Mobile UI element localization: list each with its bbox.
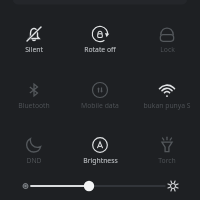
button[interactable]: Brightness — [70, 131, 130, 167]
staticText: Rotate off — [84, 45, 116, 54]
staticText: Brightness — [83, 156, 118, 165]
button[interactable]: bukan punya S — [137, 76, 197, 112]
staticText: Mobile data — [81, 101, 119, 110]
button[interactable]: Mobile data — [70, 76, 130, 112]
button[interactable]: Brightness slider — [0, 177, 200, 195]
staticText: Torch — [158, 156, 176, 165]
staticText: bukan punya S — [143, 101, 191, 110]
button[interactable]: Rotate off — [70, 20, 130, 56]
staticText: Silent — [25, 45, 43, 54]
button[interactable]: DND — [4, 131, 64, 167]
button[interactable]: Torch — [137, 131, 197, 167]
button[interactable]: Silent — [4, 20, 64, 56]
staticText: Lock — [160, 45, 175, 54]
button[interactable]: Bluetooth — [4, 76, 64, 112]
staticText: Bluetooth — [18, 101, 50, 110]
button[interactable]: Lock — [137, 20, 197, 56]
staticText: DND — [26, 156, 42, 165]
